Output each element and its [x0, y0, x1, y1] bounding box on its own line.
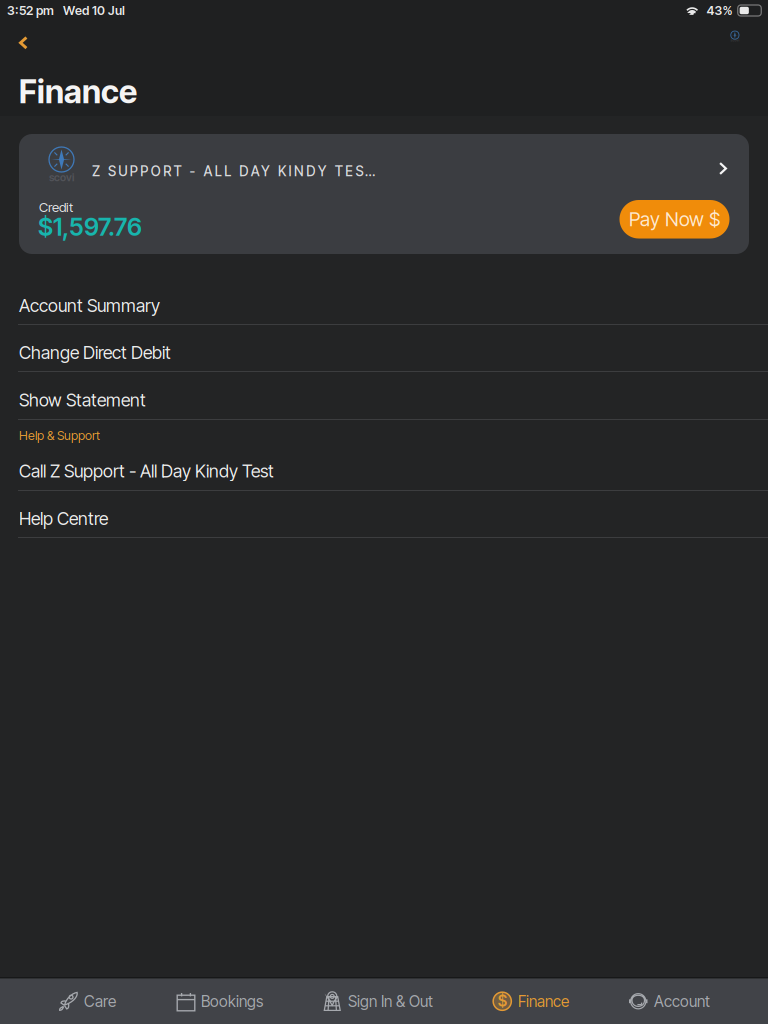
staticText: Z SUPPORT - ALL DAY KINDY TEST — [92, 163, 374, 179]
button[interactable]: $ — [478, 978, 583, 1024]
button[interactable]: Care — [44, 978, 130, 1024]
button[interactable]: Z Support - All Day Kindy Test account — [19, 142, 749, 194]
staticText: Help Centre — [19, 508, 108, 529]
staticText: scovi — [730, 38, 739, 42]
staticText: Help & Support — [19, 428, 100, 443]
button[interactable]: Account Summary — [0, 278, 768, 325]
staticText: 3:52 pm — [7, 3, 54, 18]
staticText: Sign In & Out — [348, 992, 433, 1011]
staticText: Call Z Support - All Day Kindy Test — [19, 460, 274, 482]
button[interactable]: Sign In & Out — [308, 978, 447, 1024]
staticText: Show Statement — [19, 389, 146, 411]
staticText: Pay Now $ — [629, 208, 720, 231]
button[interactable]: Call Z Support - All Day Kindy Test — [0, 443, 768, 491]
staticText: Finance — [518, 992, 569, 1011]
staticText: Bookings — [201, 992, 263, 1011]
staticText: scovi — [49, 171, 74, 184]
button[interactable]: Scovi — [714, 26, 768, 47]
staticText: Account Summary — [19, 295, 160, 316]
staticText: Account — [654, 992, 710, 1011]
button[interactable]: Show Statement — [0, 372, 768, 420]
staticText: Finance — [19, 72, 137, 111]
staticText: Wed 10 Jul — [63, 3, 125, 18]
staticText: Credit — [39, 199, 73, 215]
button[interactable]: Pay Now $ — [619, 200, 729, 238]
button[interactable]: Account — [614, 978, 724, 1024]
staticText: Care — [84, 992, 116, 1011]
staticText: Change Direct Debit — [19, 342, 171, 363]
staticText: 43% — [706, 3, 732, 18]
button[interactable]: Back — [0, 27, 45, 59]
staticText: $ — [498, 992, 507, 1010]
button[interactable]: Bookings — [161, 978, 277, 1024]
button[interactable]: Change Direct Debit — [0, 325, 768, 372]
button[interactable]: Help Centre — [0, 491, 768, 538]
staticText: $1,597.76 — [38, 212, 142, 242]
